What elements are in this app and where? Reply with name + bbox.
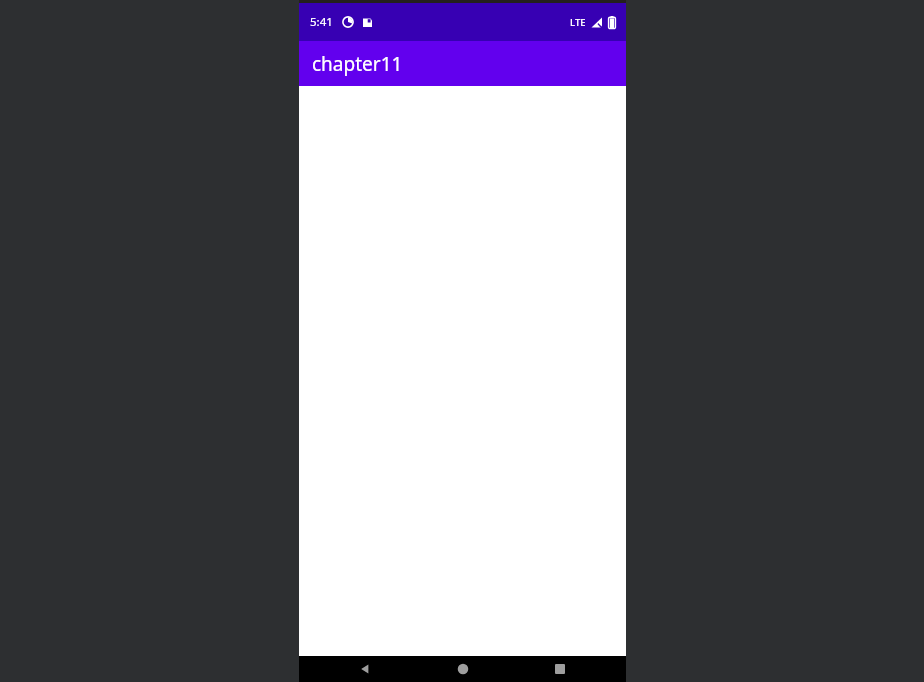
button[interactable]: Recent apps: [528, 656, 592, 682]
staticText: 5:41: [310, 14, 333, 30]
button[interactable]: Home: [431, 656, 495, 682]
staticText: LTE: [570, 16, 586, 29]
staticText: chapter11: [312, 51, 403, 77]
button[interactable]: Back: [333, 656, 397, 682]
button[interactable]: chapter11: [299, 41, 626, 86]
